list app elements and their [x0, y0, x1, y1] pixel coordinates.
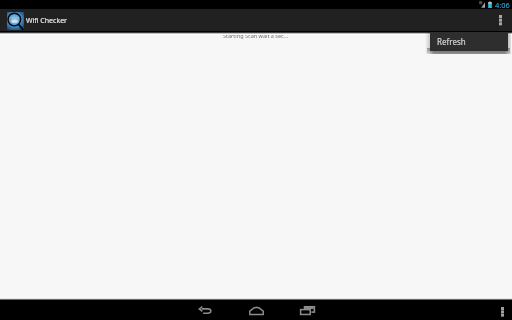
button[interactable]: Refresh — [430, 32, 508, 51]
staticText: Wifi Checker — [26, 16, 67, 26]
staticText: 4:06 — [495, 0, 510, 9]
button[interactable]: Menu — [492, 300, 512, 320]
button[interactable]: More options — [489, 9, 512, 31]
button[interactable]: Back — [180, 300, 231, 320]
staticText: Starting Scan wait a sec... — [223, 32, 289, 39]
button[interactable]: Home — [231, 300, 282, 320]
staticText: Refresh — [437, 36, 466, 47]
button[interactable]: Recents — [282, 300, 333, 320]
